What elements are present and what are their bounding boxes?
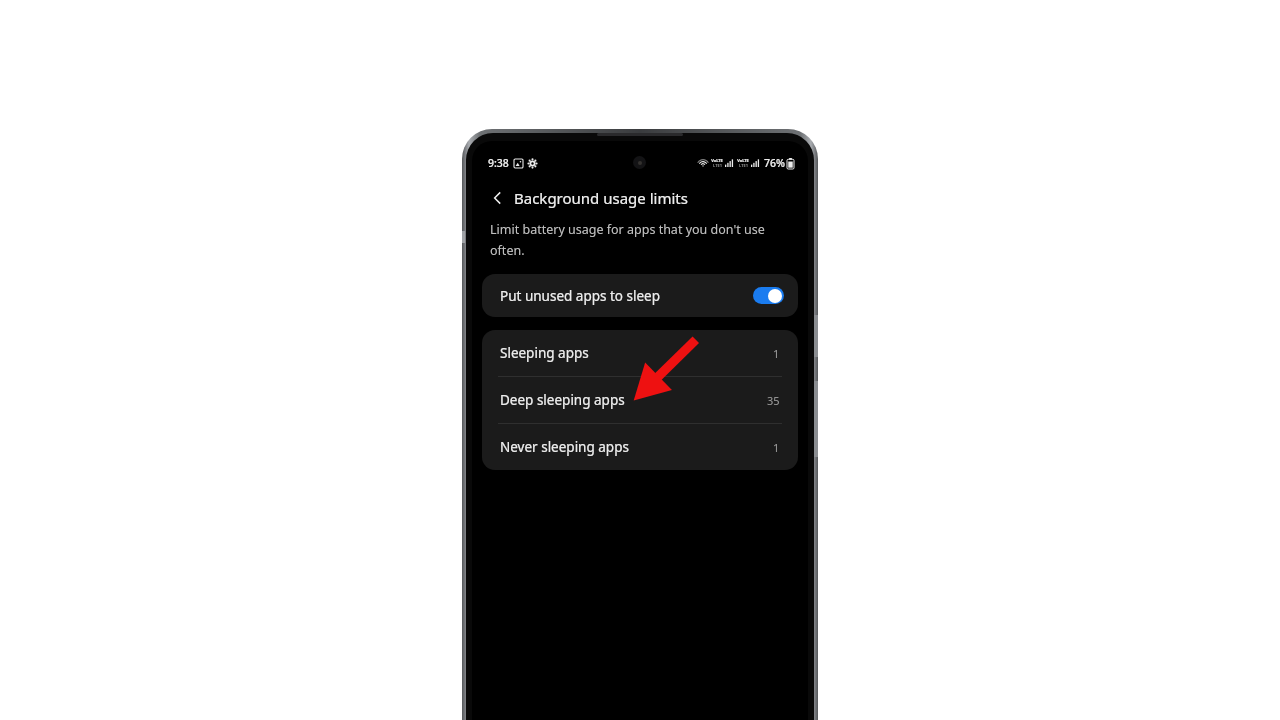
button[interactable]: Never sleeping apps	[482, 424, 798, 470]
staticText: Put unused apps to sleep	[500, 287, 753, 305]
staticText: VoLTE	[737, 158, 749, 163]
staticText: Background usage limits	[514, 188, 688, 208]
button[interactable]: Sleeping apps	[482, 330, 798, 376]
staticText: 1	[773, 346, 780, 361]
staticText: 76%	[764, 156, 785, 170]
staticText: 9:38	[488, 156, 509, 170]
staticText: Sleeping apps	[500, 344, 773, 362]
staticText: 35	[767, 393, 780, 408]
staticText: 1	[773, 440, 780, 455]
button[interactable]: Back	[486, 186, 510, 210]
staticText: LTE1	[713, 163, 722, 168]
staticText: Never sleeping apps	[500, 438, 773, 456]
button[interactable]: Put unused apps to sleep toggle	[753, 287, 784, 304]
button[interactable]: Put unused apps to sleep	[482, 274, 798, 317]
staticText: VoLTE	[711, 158, 723, 163]
staticText: Limit battery usage for apps that you do…	[490, 221, 788, 258]
staticText: Deep sleeping apps	[500, 391, 767, 409]
button[interactable]: Deep sleeping apps	[482, 377, 798, 423]
staticText: LTE1	[739, 163, 748, 168]
